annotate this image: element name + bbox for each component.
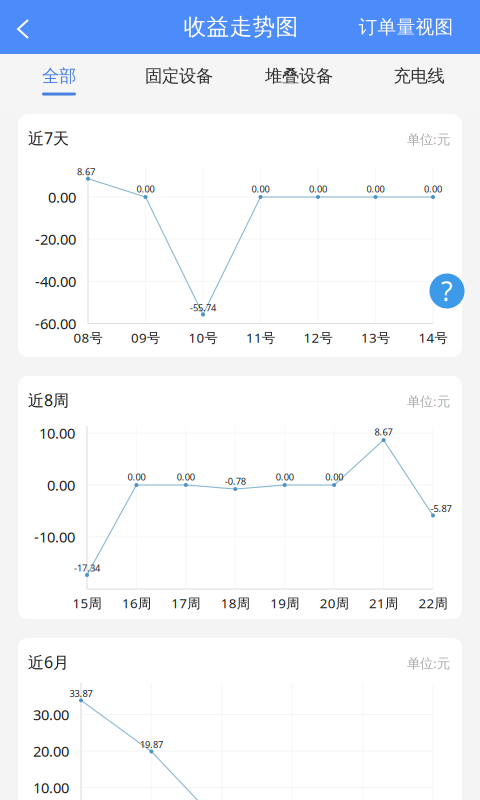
staticText: 8.67	[77, 165, 95, 178]
button[interactable]: 全部	[0, 54, 120, 114]
staticText: 0.00	[48, 187, 76, 207]
staticText: 22周	[418, 594, 447, 612]
staticText: 0.00	[136, 183, 154, 195]
staticText: -55.74	[190, 301, 216, 314]
staticText: 19周	[270, 594, 299, 612]
staticText: 20周	[320, 594, 349, 612]
staticText: 30.00	[33, 705, 69, 724]
button[interactable]: 堆叠设备	[240, 54, 360, 114]
staticText: 近7天	[28, 127, 69, 149]
button[interactable]: 订单量视图	[346, 0, 466, 54]
staticText: 近6月	[28, 651, 69, 673]
staticText: 8.67	[375, 426, 393, 438]
staticText: 21周	[369, 594, 398, 612]
staticText: 13号	[361, 329, 390, 346]
staticText: 17周	[171, 594, 200, 612]
staticText: 09号	[131, 329, 160, 346]
button[interactable]: 充电线	[360, 54, 480, 114]
button[interactable]: Help	[429, 273, 464, 308]
staticText: -20.00	[35, 229, 76, 249]
staticText: -10.00	[34, 527, 75, 547]
staticText: 33.87	[69, 687, 92, 700]
staticText: 0.00	[47, 475, 75, 495]
staticText: 14号	[418, 329, 447, 346]
staticText: 0.00	[424, 183, 442, 195]
button[interactable]: 固定设备	[120, 54, 240, 114]
staticText: 0.00	[325, 471, 343, 483]
staticText: ?	[441, 273, 453, 309]
staticText: 单位:元	[407, 392, 450, 410]
staticText: 10号	[188, 329, 217, 346]
staticText: 单位:元	[407, 130, 450, 148]
staticText: -60.00	[35, 314, 76, 333]
staticText: 08号	[73, 329, 102, 346]
button[interactable]: Back	[0, 0, 48, 54]
staticText: -40.00	[35, 272, 76, 291]
staticText: 10.00	[39, 423, 75, 443]
staticText: 0.00	[251, 183, 269, 195]
staticText: 19.87	[140, 738, 163, 751]
staticText: 收益走势图	[183, 13, 298, 41]
staticText: 近8周	[28, 389, 69, 411]
staticText: 堆叠设备	[265, 65, 333, 87]
staticText: 0.00	[177, 471, 195, 483]
staticText: 0.00	[366, 183, 384, 195]
staticText: 0.00	[309, 183, 327, 195]
staticText: 固定设备	[145, 65, 213, 87]
staticText: 15周	[72, 594, 101, 612]
staticText: 10.00	[33, 778, 69, 797]
staticText: 订单量视图	[358, 15, 453, 38]
staticText: -0.78	[225, 475, 246, 487]
staticText: 全部	[42, 65, 76, 87]
staticText: 20.00	[33, 741, 69, 761]
staticText: -17.34	[74, 562, 100, 574]
staticText: 12号	[303, 329, 332, 346]
staticText: 0.00	[127, 471, 145, 483]
staticText: 18周	[221, 594, 250, 612]
staticText: -5.87	[430, 502, 451, 515]
staticText: 充电线	[393, 65, 444, 87]
staticText: 16周	[122, 594, 151, 612]
staticText: 0.00	[276, 471, 294, 483]
staticText: 单位:元	[407, 654, 450, 672]
staticText: 11号	[246, 329, 275, 346]
